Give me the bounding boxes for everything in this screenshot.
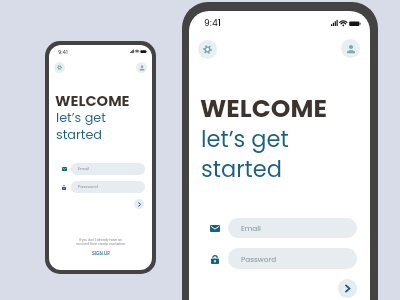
staticText: let’s get started	[56, 109, 106, 143]
staticText: let’s get started	[201, 123, 289, 185]
button[interactable]: Profile	[341, 39, 360, 58]
button[interactable]: Next	[338, 279, 357, 298]
staticText: SIGN UP	[92, 250, 110, 256]
staticText: WELCOME	[200, 91, 327, 126]
staticText: 9:41	[204, 17, 221, 30]
staticText: If you don’t already have an account the…	[76, 238, 125, 246]
button[interactable]: Password	[71, 181, 145, 193]
button[interactable]: Profile	[136, 62, 147, 73]
button[interactable]: SIGN UP	[92, 250, 110, 256]
button[interactable]: Next	[134, 199, 144, 209]
button[interactable]: Email	[71, 163, 145, 175]
staticText: Email	[78, 166, 90, 172]
button[interactable]: Settings	[198, 40, 217, 59]
staticText: Password	[241, 254, 277, 264]
button[interactable]: Email	[228, 218, 357, 238]
staticText: Email	[241, 223, 261, 233]
staticText: WELCOME	[55, 91, 130, 112]
staticText: 9:41	[58, 49, 68, 56]
staticText: Password	[78, 184, 98, 190]
button[interactable]: Password	[228, 248, 357, 269]
button[interactable]: Settings	[54, 62, 65, 73]
